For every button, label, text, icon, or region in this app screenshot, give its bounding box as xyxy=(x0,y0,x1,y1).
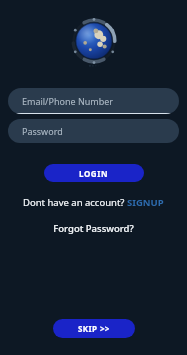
staticText: SIGNUP xyxy=(127,196,164,209)
staticText: LOGIN xyxy=(79,168,109,179)
staticText: Forgot Password? xyxy=(53,222,134,235)
button[interactable]: Forgot Password? xyxy=(53,222,134,235)
button[interactable]: Email/Phone Number xyxy=(8,88,179,114)
staticText: Password xyxy=(22,125,63,137)
staticText: SKIP >> xyxy=(78,323,110,334)
staticText: Dont have an account? xyxy=(23,196,127,209)
staticText: Email/Phone Number xyxy=(22,95,114,107)
button[interactable]: SKIP >> xyxy=(53,319,135,338)
other: App logo xyxy=(71,18,117,64)
button[interactable]: LOGIN xyxy=(44,164,144,182)
button[interactable]: Password xyxy=(8,119,179,143)
button[interactable]: Dont have an account? xyxy=(23,196,164,209)
